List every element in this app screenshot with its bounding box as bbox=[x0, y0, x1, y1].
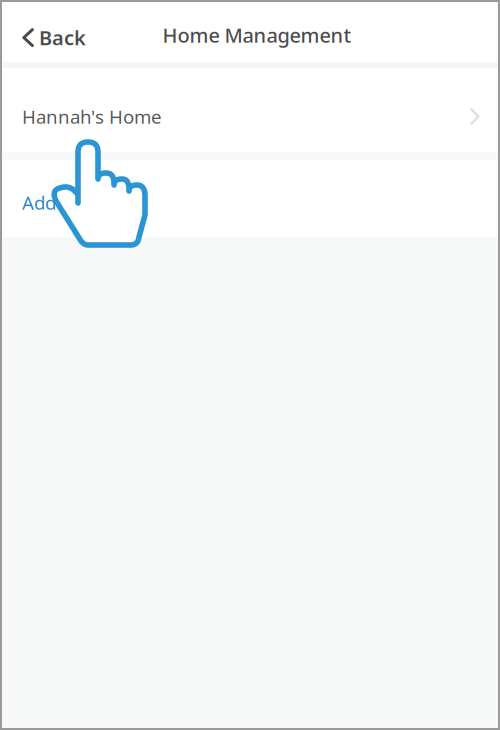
staticText: Back bbox=[39, 24, 86, 51]
button[interactable]: Back bbox=[0, 0, 100, 62]
staticText: Add Home bbox=[22, 190, 114, 215]
button[interactable]: Add Home bbox=[0, 160, 500, 237]
button[interactable]: Hannah's Home bbox=[0, 68, 500, 152]
staticText: Home Management bbox=[162, 22, 351, 48]
staticText: Hannah's Home bbox=[22, 104, 162, 129]
